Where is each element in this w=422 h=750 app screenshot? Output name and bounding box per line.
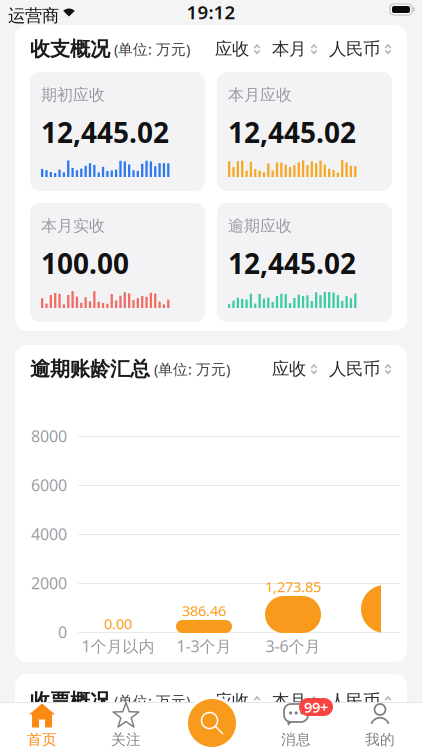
- button[interactable]: 消息: [254, 702, 338, 750]
- staticText: 12,445.02: [228, 114, 356, 151]
- button[interactable]: 应收: [272, 358, 318, 380]
- staticText: 3-6个月: [265, 635, 320, 657]
- staticText: 应收: [215, 38, 249, 60]
- button[interactable]: 人民币: [329, 690, 392, 712]
- staticText: 12,445.02: [41, 114, 169, 151]
- staticText: 0: [58, 621, 67, 643]
- staticText: 本月应收: [228, 85, 292, 105]
- staticText: 6000: [31, 474, 67, 496]
- staticText: 消息: [281, 730, 311, 748]
- staticText: 本月实收: [41, 216, 105, 236]
- button[interactable]: [184, 695, 240, 750]
- staticText: 逾期应收: [228, 216, 292, 236]
- staticText: 1-3个月: [176, 635, 231, 657]
- staticText: 4000: [31, 523, 67, 545]
- staticText: 人民币: [329, 358, 380, 380]
- button[interactable]: 人民币: [329, 38, 392, 60]
- staticText: 我的: [365, 730, 395, 748]
- staticText: 收票概况: [30, 689, 110, 713]
- staticText: 19:12: [186, 0, 235, 24]
- staticText: 99+: [304, 697, 328, 717]
- staticText: 100.00: [41, 245, 129, 282]
- staticText: 1个月以内: [81, 635, 154, 657]
- button[interactable]: 应收: [215, 690, 261, 712]
- staticText: 应收: [215, 690, 249, 712]
- button[interactable]: 人民币: [329, 358, 392, 380]
- staticText: 1,273.85: [265, 577, 321, 596]
- staticText: 本月: [272, 38, 306, 60]
- staticText: 收支概况: [30, 37, 110, 61]
- button[interactable]: 应收: [215, 38, 261, 60]
- staticText: 本月: [272, 690, 306, 712]
- staticText: 2000: [31, 572, 67, 594]
- button[interactable]: 本月: [272, 690, 318, 712]
- staticText: 首页: [27, 730, 57, 748]
- staticText: 386.46: [182, 601, 226, 620]
- button[interactable]: 首页: [0, 702, 84, 750]
- staticText: (单位: 万元): [110, 39, 190, 59]
- button[interactable]: 本月: [272, 38, 318, 60]
- staticText: 12,445.02: [228, 245, 356, 282]
- staticText: 0.00: [104, 614, 132, 633]
- staticText: 人民币: [329, 38, 380, 60]
- staticText: 运营商: [8, 5, 59, 26]
- staticText: 8000: [31, 425, 67, 447]
- staticText: 关注: [111, 730, 141, 748]
- button[interactable]: 我的: [338, 702, 422, 750]
- staticText: 应收: [272, 358, 306, 380]
- staticText: (单位: 万元): [150, 359, 230, 379]
- button[interactable]: 关注: [84, 702, 168, 750]
- staticText: (单位: 万元): [110, 691, 190, 711]
- staticText: 逾期账龄汇总: [30, 357, 150, 381]
- staticText: 人民币: [329, 690, 380, 712]
- staticText: 期初应收: [41, 85, 105, 105]
